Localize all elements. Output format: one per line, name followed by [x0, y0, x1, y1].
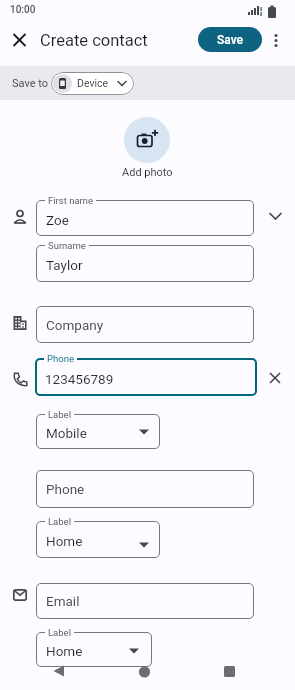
staticText: Phone: [47, 353, 74, 364]
button[interactable]: [48, 660, 70, 682]
staticText: Label: [48, 516, 71, 527]
button[interactable]: Zoe: [36, 200, 254, 236]
button[interactable]: 123456789: [35, 358, 257, 396]
staticText: Surname: [48, 240, 86, 251]
button[interactable]: Company: [36, 306, 254, 343]
staticText: Email: [46, 593, 80, 609]
button[interactable]: [266, 28, 286, 52]
button[interactable]: [264, 204, 288, 228]
staticText: Company: [46, 317, 104, 333]
button[interactable]: Taylor: [36, 245, 254, 282]
button[interactable]: Device: [51, 72, 134, 95]
button[interactable]: [133, 661, 155, 683]
staticText: Mobile: [46, 425, 87, 441]
button[interactable]: Phone: [36, 470, 254, 508]
button[interactable]: Home: [36, 632, 152, 667]
staticText: Taylor: [46, 257, 83, 273]
button[interactable]: Save: [198, 27, 262, 52]
staticText: 10:00: [10, 4, 36, 16]
button[interactable]: Email: [36, 583, 254, 619]
staticText: Label: [48, 627, 71, 638]
staticText: First name: [48, 195, 93, 206]
staticText: Save: [217, 33, 243, 47]
staticText: Label: [48, 409, 71, 420]
staticText: 123456789: [45, 371, 114, 387]
staticText: Create contact: [40, 31, 148, 50]
button[interactable]: Mobile: [36, 414, 160, 449]
staticText: Home: [46, 533, 83, 549]
staticText: Device: [77, 77, 109, 89]
button[interactable]: [263, 366, 287, 390]
button[interactable]: Home: [36, 521, 160, 558]
staticText: Phone: [46, 481, 85, 497]
staticText: Home: [46, 643, 83, 659]
button[interactable]: [218, 660, 240, 682]
button[interactable]: [124, 117, 170, 163]
staticText: Add photo: [122, 166, 173, 179]
staticText: Zoe: [46, 212, 69, 228]
button[interactable]: [8, 28, 32, 52]
staticText: Save to: [12, 77, 49, 90]
